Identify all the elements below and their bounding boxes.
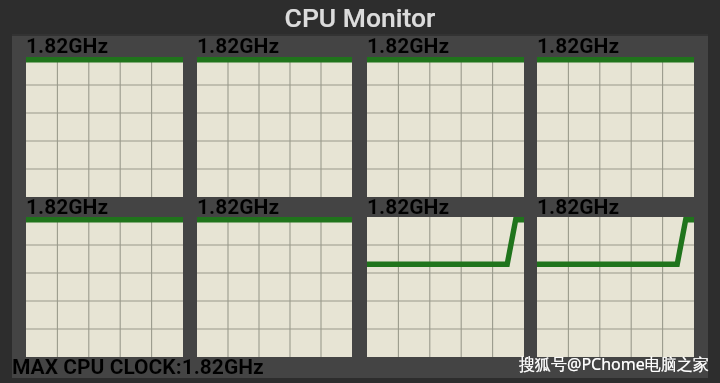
staticText: 1.82GHz xyxy=(26,34,109,59)
button[interactable]: CPU Monitor xyxy=(0,2,720,33)
button[interactable]: CPU core 3 clock graph, 1.82GHz xyxy=(367,57,524,197)
staticText: 1.82GHz xyxy=(197,195,280,220)
staticText: 1.82GHz xyxy=(26,195,109,220)
button[interactable]: CPU core 2 clock graph, 1.82GHz xyxy=(197,57,352,197)
staticText: 1.82GHz xyxy=(537,34,620,59)
staticText: MAX CPU CLOCK:1.82GHz xyxy=(12,355,264,380)
staticText: 1.82GHz xyxy=(537,195,620,220)
staticText: 1.82GHz xyxy=(197,34,280,59)
button[interactable]: CPU core 4 clock graph, 1.82GHz xyxy=(537,57,694,197)
button[interactable]: CPU core 7 clock graph, 1.82GHz xyxy=(367,217,524,357)
button[interactable]: CPU core 5 clock graph, 1.82GHz xyxy=(26,217,183,357)
staticText: 搜狐号@PChome电脑之家 xyxy=(519,353,709,375)
staticText: 1.82GHz xyxy=(367,195,450,220)
button[interactable]: CPU core 8 clock graph, 1.82GHz xyxy=(537,217,694,357)
button[interactable]: CPU core 1 clock graph, 1.82GHz xyxy=(26,57,183,197)
button[interactable]: CPU core 6 clock graph, 1.82GHz xyxy=(197,217,352,357)
staticText: 1.82GHz xyxy=(367,34,450,59)
